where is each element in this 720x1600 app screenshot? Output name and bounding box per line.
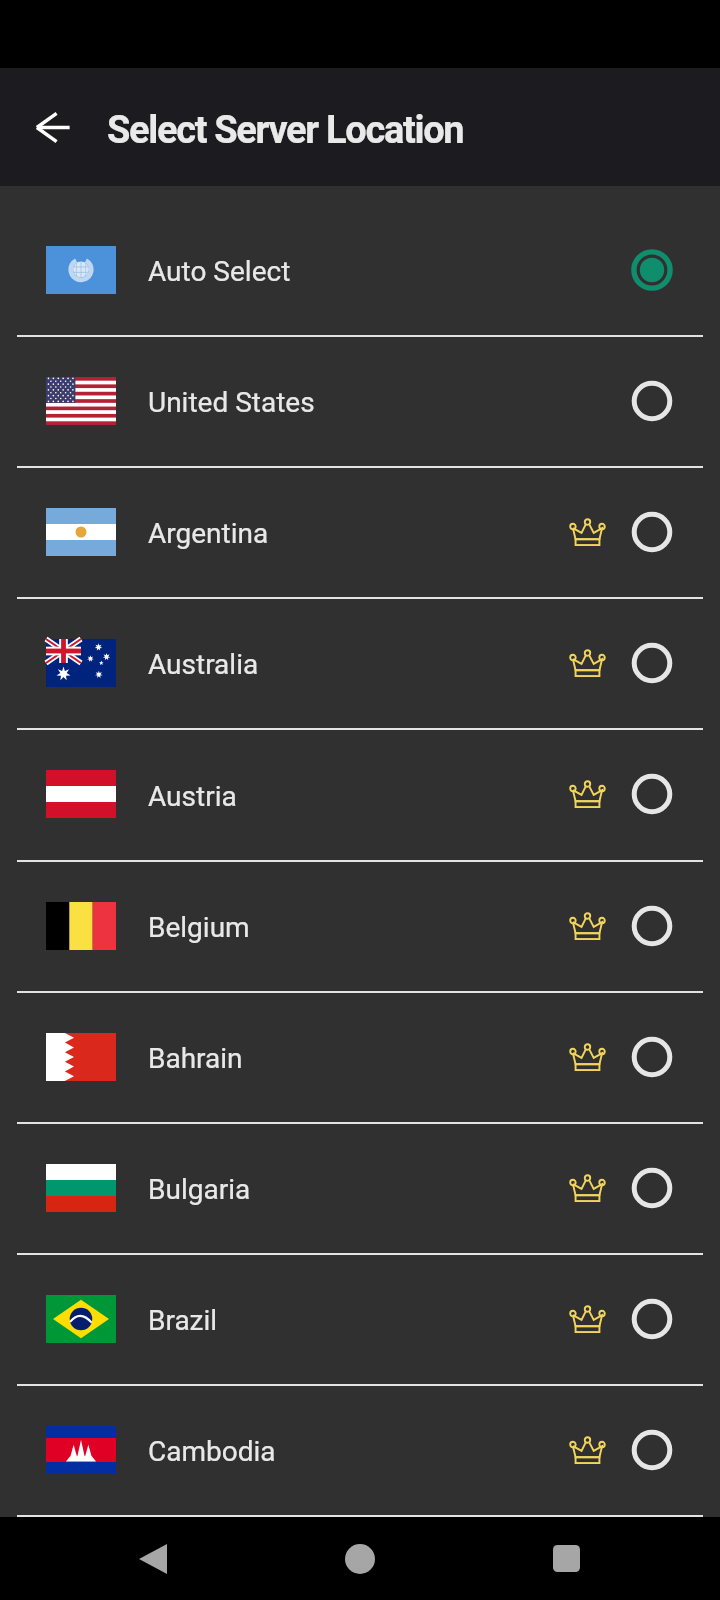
button[interactable]: Argentina: [0, 468, 720, 597]
staticText: United States: [148, 386, 315, 419]
staticText: Cambodia: [148, 1435, 276, 1468]
button[interactable]: Home: [256, 1517, 463, 1600]
button[interactable]: United States: [0, 337, 720, 466]
button[interactable]: Back: [16, 90, 90, 164]
button[interactable]: Austria: [0, 730, 720, 860]
staticText: Select Server Location: [107, 108, 464, 153]
button[interactable]: Recent apps: [463, 1517, 670, 1600]
button[interactable]: Australia: [0, 599, 720, 728]
staticText: Australia: [148, 648, 259, 681]
button[interactable]: Brazil: [0, 1255, 720, 1384]
staticText: Brazil: [148, 1304, 218, 1337]
staticText: Bulgaria: [148, 1173, 251, 1206]
staticText: Belgium: [148, 911, 250, 944]
button[interactable]: Auto Select: [0, 206, 720, 335]
button[interactable]: Cambodia: [0, 1386, 720, 1515]
button[interactable]: Bulgaria: [0, 1124, 720, 1253]
staticText: Austria: [148, 780, 237, 813]
staticText: Auto Select: [148, 255, 291, 288]
staticText: Argentina: [148, 517, 269, 550]
button[interactable]: System back: [50, 1517, 256, 1600]
staticText: Bahrain: [148, 1042, 243, 1075]
button[interactable]: Belgium: [0, 862, 720, 991]
button[interactable]: Bahrain: [0, 993, 720, 1122]
